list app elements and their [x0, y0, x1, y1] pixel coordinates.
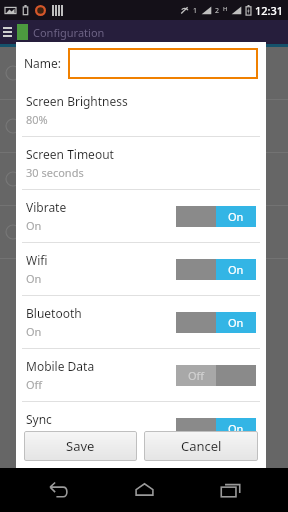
button[interactable]: Vibrate [16, 190, 266, 242]
staticText: H [223, 5, 228, 13]
staticText: Configuration [33, 25, 105, 40]
staticText: On [228, 421, 244, 436]
staticText: Vibrate [26, 199, 67, 215]
staticText: 1 [193, 6, 198, 16]
button[interactable]: Sync [16, 402, 266, 454]
staticText: Screen Timeout [26, 146, 114, 162]
staticText: Off [188, 368, 205, 383]
button[interactable] [68, 48, 258, 79]
button[interactable]: Home [116, 468, 172, 512]
staticText: Wifi [26, 252, 48, 268]
button[interactable]: Back [30, 468, 86, 512]
button[interactable]: Recents [202, 468, 258, 512]
button[interactable]: Wifi [16, 243, 266, 295]
staticText: 12:31 [255, 3, 284, 18]
button[interactable]: Bluetooth [16, 296, 266, 348]
button[interactable]: Toggle on [176, 259, 256, 280]
staticText: Off [26, 377, 43, 392]
staticText: On [228, 262, 244, 277]
staticText: Save [66, 437, 95, 455]
button[interactable]: Toggle off [176, 365, 256, 386]
staticText: Screen Brightness [26, 93, 128, 109]
staticText: On [26, 430, 42, 445]
button[interactable]: Cancel [144, 431, 258, 461]
button[interactable]: Toggle on [176, 312, 256, 333]
staticText: On [228, 209, 244, 224]
staticText: Name: [24, 55, 62, 71]
staticText: Bluetooth [26, 305, 82, 321]
staticText: 2 [215, 6, 220, 16]
staticText: On [26, 218, 42, 233]
button[interactable]: Save [24, 431, 137, 461]
staticText: On [26, 271, 42, 286]
staticText: Sync [26, 411, 52, 427]
staticText: On [228, 315, 244, 330]
button[interactable]: Screen Timeout [16, 137, 266, 189]
button[interactable]: Toggle on [176, 206, 256, 227]
staticText: 30 seconds [26, 165, 84, 180]
button[interactable]: Mobile Data [16, 349, 266, 401]
staticText: 80% [26, 112, 48, 127]
button[interactable]: Screen Brightness [16, 84, 266, 136]
staticText: Cancel [181, 437, 222, 455]
staticText: On [26, 324, 42, 339]
staticText: Mobile Data [26, 358, 95, 374]
button[interactable]: Toggle on [176, 418, 256, 439]
